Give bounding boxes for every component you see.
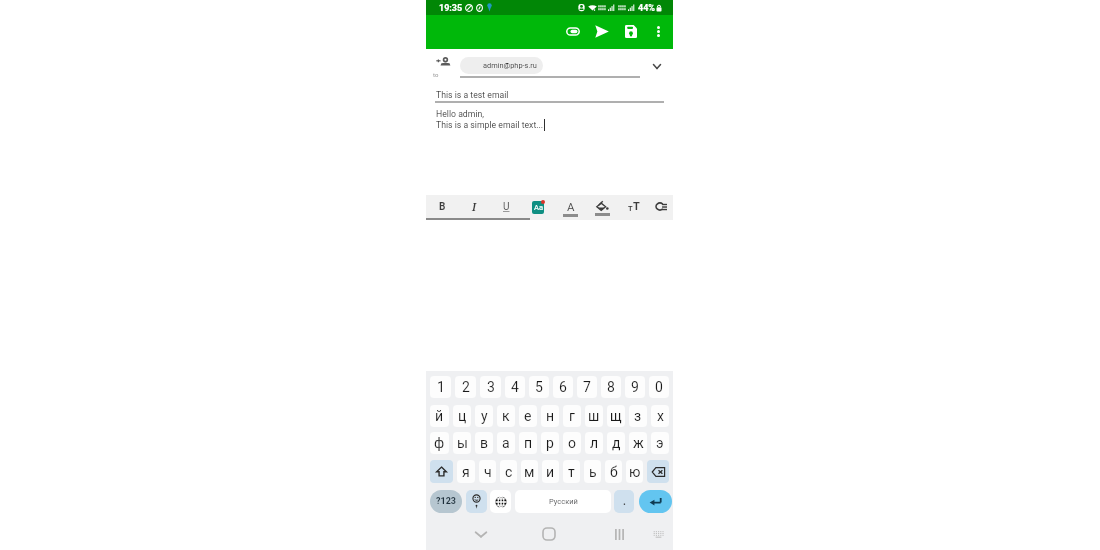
- staticText: 2: [462, 379, 470, 395]
- button[interactable]: 3: [480, 376, 501, 398]
- button[interactable]: е: [519, 405, 537, 427]
- staticText: 4: [511, 379, 519, 395]
- button[interactable]: ш: [585, 405, 603, 427]
- button[interactable]: Space: [515, 490, 611, 513]
- button[interactable]: Keyboard layout: [644, 521, 672, 547]
- staticText: 19:35: [439, 3, 463, 14]
- staticText: I: [472, 200, 477, 214]
- button[interactable]: а: [497, 432, 515, 454]
- button[interactable]: п: [519, 432, 537, 454]
- staticText: е: [524, 408, 532, 424]
- button[interactable]: Underline: [490, 195, 522, 218]
- button[interactable]: л: [585, 432, 603, 454]
- button[interactable]: м: [521, 460, 538, 483]
- button[interactable]: й: [430, 405, 449, 427]
- staticText: 8: [607, 379, 615, 395]
- button[interactable]: к: [497, 405, 515, 427]
- button[interactable]: ч: [479, 460, 496, 483]
- button[interactable]: ь: [584, 460, 601, 483]
- staticText: б: [610, 464, 618, 480]
- button[interactable]: Send: [587, 17, 616, 46]
- staticText: с: [505, 464, 513, 480]
- button[interactable]: More options: [645, 17, 671, 46]
- button[interactable]: х: [651, 405, 669, 427]
- button[interactable]: Period: [614, 490, 634, 513]
- button[interactable]: Backspace: [647, 460, 669, 483]
- button[interactable]: ж: [629, 432, 647, 454]
- button[interactable]: Bold: [426, 195, 458, 218]
- staticText: х: [657, 408, 664, 424]
- staticText: й: [435, 408, 444, 424]
- button[interactable]: admin@php-s.ru: [460, 57, 543, 74]
- button[interactable]: б: [605, 460, 622, 483]
- staticText: а: [502, 435, 510, 451]
- button[interactable]: Indent: [650, 195, 673, 218]
- button[interactable]: Emoji: [466, 490, 487, 513]
- button[interactable]: ф: [430, 432, 449, 454]
- button[interactable]: 2: [455, 376, 476, 398]
- button[interactable]: Symbols: [430, 490, 462, 513]
- button[interactable]: д: [607, 432, 625, 454]
- button[interactable]: Home: [532, 521, 566, 547]
- button[interactable]: Expand recipients: [644, 54, 670, 78]
- button[interactable]: 9: [625, 376, 645, 398]
- staticText: This is a test email: [436, 90, 509, 100]
- button[interactable]: г: [563, 405, 581, 427]
- button[interactable]: 4: [505, 376, 525, 398]
- button[interactable]: Font: [522, 195, 554, 218]
- staticText: д: [612, 435, 621, 451]
- staticText: ?123: [436, 496, 456, 507]
- button[interactable]: в: [475, 432, 493, 454]
- button[interactable]: с: [500, 460, 517, 483]
- staticText: Hello admin,: [436, 109, 485, 119]
- staticText: в: [480, 435, 489, 451]
- button[interactable]: н: [541, 405, 559, 427]
- button[interactable]: э: [651, 432, 669, 454]
- button[interactable]: Hide keyboard: [464, 521, 498, 547]
- button[interactable]: Shift: [430, 460, 453, 483]
- button[interactable]: 7: [577, 376, 597, 398]
- button[interactable]: Add recipient: [433, 57, 453, 81]
- staticText: я: [462, 464, 470, 480]
- button[interactable]: ц: [453, 405, 471, 427]
- staticText: ф: [434, 435, 445, 451]
- staticText: 6: [559, 379, 567, 395]
- button[interactable]: Highlight colour: [586, 195, 618, 218]
- staticText: у: [481, 408, 488, 424]
- button[interactable]: щ: [607, 405, 625, 427]
- button[interactable]: 6: [553, 376, 573, 398]
- staticText: э: [656, 435, 664, 451]
- button[interactable]: р: [541, 432, 559, 454]
- button[interactable]: я: [457, 460, 475, 483]
- staticText: н: [546, 408, 555, 424]
- button[interactable]: ю: [626, 460, 643, 483]
- staticText: ж: [633, 435, 644, 451]
- button[interactable]: и: [542, 460, 559, 483]
- button[interactable]: ы: [453, 432, 471, 454]
- button[interactable]: о: [563, 432, 581, 454]
- staticText: Aa: [534, 203, 543, 212]
- button[interactable]: Attach file: [558, 17, 587, 46]
- button[interactable]: 0: [649, 376, 669, 398]
- button[interactable]: з: [629, 405, 647, 427]
- button[interactable]: 8: [601, 376, 621, 398]
- button[interactable]: Text colour: [554, 195, 586, 218]
- staticText: и: [546, 464, 555, 480]
- staticText: T: [633, 200, 640, 213]
- staticText: л: [590, 435, 599, 451]
- staticText: U: [503, 201, 510, 213]
- button[interactable]: т: [563, 460, 580, 483]
- staticText: ю: [629, 464, 641, 480]
- button[interactable]: Enter: [639, 490, 672, 513]
- button[interactable]: Save draft: [616, 17, 645, 46]
- button[interactable]: Recent apps: [604, 521, 634, 547]
- button[interactable]: 5: [529, 376, 549, 398]
- staticText: 1: [437, 379, 445, 395]
- staticText: A: [567, 200, 575, 213]
- button[interactable]: 1: [430, 376, 451, 398]
- staticText: к: [502, 408, 510, 424]
- button[interactable]: Change language: [490, 490, 511, 513]
- button[interactable]: у: [475, 405, 493, 427]
- button[interactable]: Text size: [618, 195, 650, 218]
- button[interactable]: Italic: [458, 195, 490, 218]
